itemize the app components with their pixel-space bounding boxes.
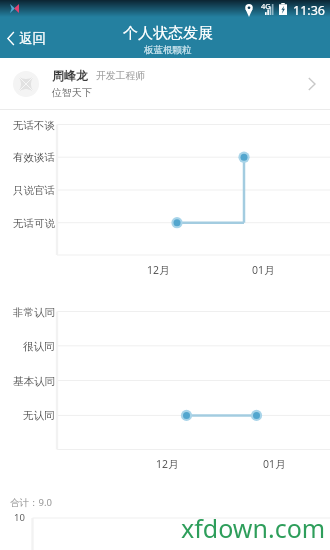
button[interactable]: 周峰龙 bbox=[0, 58, 330, 109]
staticText: 非常认同 bbox=[13, 306, 55, 319]
staticText: 只说官话 bbox=[13, 184, 55, 197]
staticText: 无话不谈 bbox=[13, 119, 55, 132]
other: 电量 bbox=[279, 3, 287, 15]
staticText: xfdown.com bbox=[181, 511, 326, 545]
staticText: 01月 bbox=[263, 457, 286, 471]
staticText: 10 bbox=[14, 511, 25, 524]
staticText: 有效谈话 bbox=[13, 151, 55, 164]
other: 详情 bbox=[308, 78, 316, 90]
staticText: 开发工程师 bbox=[96, 70, 145, 82]
other: 定位 bbox=[245, 4, 253, 17]
staticText: 12月 bbox=[156, 457, 179, 471]
staticText: 很认同 bbox=[23, 340, 55, 353]
staticText: 4G bbox=[261, 1, 271, 11]
staticText: 11:36 bbox=[293, 2, 325, 19]
staticText: 个人状态发展 bbox=[123, 24, 213, 43]
staticText: 无认同 bbox=[23, 409, 55, 422]
staticText: 返回 bbox=[19, 30, 46, 47]
staticText: 01月 bbox=[252, 263, 275, 277]
staticText: 12月 bbox=[147, 263, 170, 277]
staticText: 基本认同 bbox=[13, 375, 55, 388]
staticText: 合计：9.0 bbox=[10, 496, 52, 509]
button[interactable]: 返回 bbox=[0, 24, 56, 53]
staticText: 周峰龙 bbox=[52, 68, 88, 83]
staticText: 板蓝根颗粒 bbox=[144, 44, 192, 56]
staticText: 位智天下 bbox=[52, 86, 92, 99]
staticText: 无话可说 bbox=[13, 217, 55, 230]
